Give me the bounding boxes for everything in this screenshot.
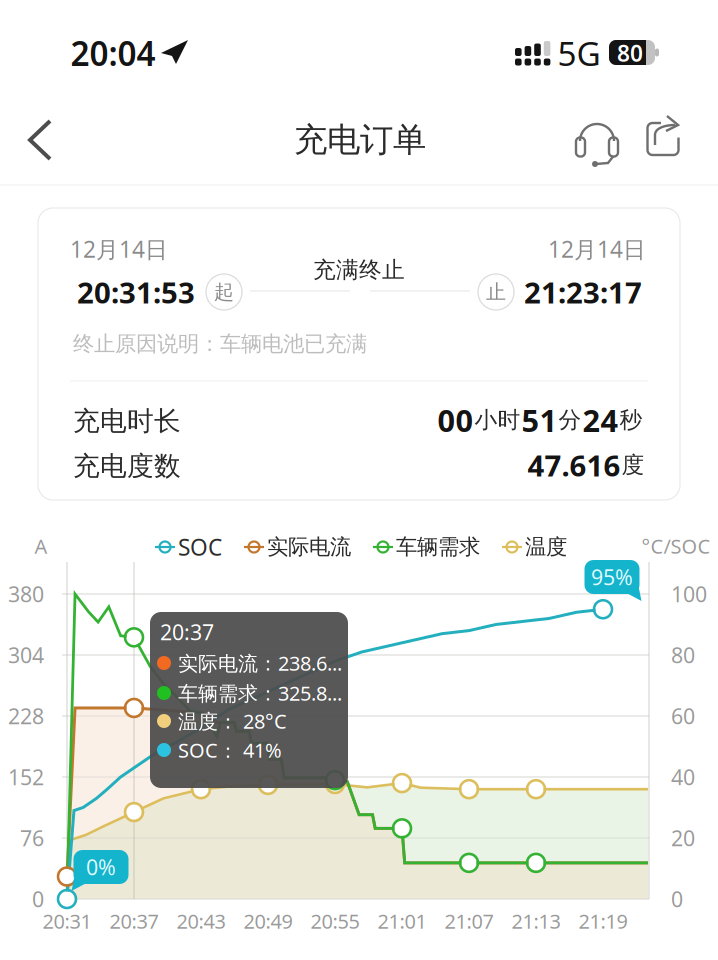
staticText: A <box>34 533 47 559</box>
staticText: SOC <box>178 532 222 562</box>
staticText: 度 <box>621 451 644 479</box>
staticText: 76 <box>20 824 44 852</box>
staticText: 95% <box>591 563 633 591</box>
staticText: 228 <box>8 702 44 730</box>
staticText: 80 <box>671 641 695 669</box>
staticText: 车辆需求 <box>396 534 480 560</box>
staticText: 152 <box>8 763 44 791</box>
staticText: 20:37 <box>109 908 158 934</box>
staticText: 充满终止 <box>313 256 405 284</box>
staticText: 充电度数 <box>73 450 181 482</box>
staticText: 分 <box>558 406 581 434</box>
staticText: 00 <box>437 400 473 440</box>
staticText: 80 <box>617 38 643 68</box>
staticText: 20:37 <box>160 618 214 646</box>
staticText: 21:19 <box>578 908 627 934</box>
staticText: 51 <box>521 400 557 440</box>
staticText: 20:04 <box>70 31 155 75</box>
staticText: 100 <box>671 580 707 608</box>
staticText: 温度： 28°C <box>178 708 287 734</box>
button[interactable]: Share <box>635 113 691 169</box>
staticText: 实际电流：238.6... <box>178 650 342 676</box>
staticText: 21:23:17 <box>524 272 642 311</box>
staticText: 秒 <box>619 406 642 434</box>
staticText: 21:01 <box>377 908 426 934</box>
staticText: 20:55 <box>310 908 359 934</box>
staticText: 止 <box>486 280 506 304</box>
staticText: 小时 <box>474 406 520 434</box>
staticText: °C/SOC <box>641 533 710 559</box>
staticText: 终止原因说明：车辆电池已充满 <box>73 331 367 357</box>
staticText: 12月14日 <box>70 234 168 264</box>
staticText: 0 <box>671 885 683 913</box>
staticText: 实际电流 <box>267 534 351 560</box>
staticText: 47.616 <box>527 445 620 484</box>
staticText: 20:49 <box>243 908 292 934</box>
staticText: 0 <box>32 885 44 913</box>
staticText: 20:43 <box>176 908 225 934</box>
staticText: 温度 <box>525 534 567 560</box>
staticText: 24 <box>582 400 618 440</box>
staticText: 20:31 <box>42 908 91 934</box>
staticText: 21:13 <box>511 908 560 934</box>
staticText: SOC： 41% <box>178 737 282 763</box>
staticText: 304 <box>8 641 44 669</box>
button[interactable]: Customer service <box>569 113 625 169</box>
staticText: 21:07 <box>444 908 493 934</box>
staticText: 20:31:53 <box>77 272 195 311</box>
staticText: 车辆需求：325.8... <box>178 680 342 706</box>
staticText: 60 <box>671 702 695 730</box>
staticText: 20 <box>671 824 695 852</box>
button[interactable]: Back <box>0 102 72 178</box>
staticText: 5G <box>557 31 600 75</box>
staticText: 充电订单 <box>294 119 426 160</box>
staticText: 380 <box>8 580 44 608</box>
staticText: 12月14日 <box>548 234 646 264</box>
staticText: 起 <box>214 280 234 304</box>
staticText: 充电时长 <box>73 405 181 437</box>
staticText: 40 <box>671 763 695 791</box>
staticText: 0% <box>86 853 116 881</box>
